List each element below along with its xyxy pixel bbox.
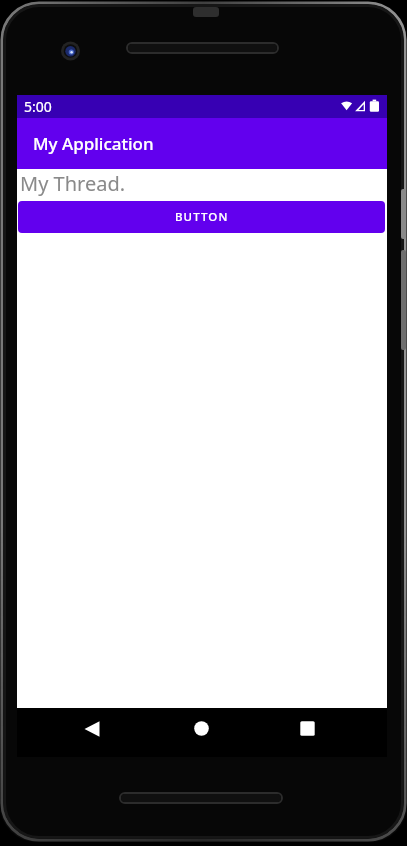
staticText: My Thread. [20,170,126,197]
button[interactable] [283,704,331,753]
staticText: 5:00 [24,97,52,116]
button[interactable]: BUTTON [18,201,385,233]
staticText: BUTTON [175,209,229,225]
button[interactable] [68,704,116,753]
staticText: My Application [33,132,154,155]
button[interactable]: My Thread. [17,169,387,199]
button[interactable] [177,704,225,753]
